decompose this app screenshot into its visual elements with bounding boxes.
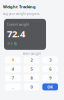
staticText: 1 — [12, 57, 14, 62]
staticText: 72.4 — [7, 27, 25, 40]
staticText: Current weight — [7, 23, 29, 26]
staticText: 4 — [12, 66, 14, 71]
staticText: 8 — [30, 75, 32, 80]
button[interactable]: Save weight — [42, 83, 58, 90]
staticText: -0.6 kg — [7, 42, 17, 45]
staticText: 3 — [49, 57, 51, 62]
staticText: OK — [47, 84, 53, 89]
button[interactable]: 3 — [42, 56, 58, 63]
staticText: Enter weight — [23, 52, 41, 55]
button[interactable]: 0 — [24, 83, 39, 90]
button[interactable]: 8 — [24, 74, 39, 81]
button[interactable]: 6 — [42, 65, 58, 72]
button[interactable]: 5 — [24, 65, 39, 72]
button[interactable]: 4 — [5, 65, 21, 72]
staticText: 0 — [30, 84, 32, 89]
staticText: 7 — [12, 75, 14, 80]
staticText: 2 — [30, 57, 32, 62]
button[interactable]: 1 — [5, 56, 21, 63]
staticText: . — [12, 84, 13, 89]
button[interactable]: . — [5, 83, 21, 90]
button[interactable]: 7 — [5, 74, 21, 81]
staticText: 9 — [49, 75, 51, 80]
staticText: Log your weight progress — [3, 12, 39, 16]
button[interactable]: 2 — [24, 56, 39, 63]
staticText: Weight Tracking — [3, 4, 36, 9]
button[interactable]: 9 — [42, 74, 58, 81]
staticText: 5 — [30, 66, 32, 71]
staticText: 6 — [49, 66, 51, 71]
